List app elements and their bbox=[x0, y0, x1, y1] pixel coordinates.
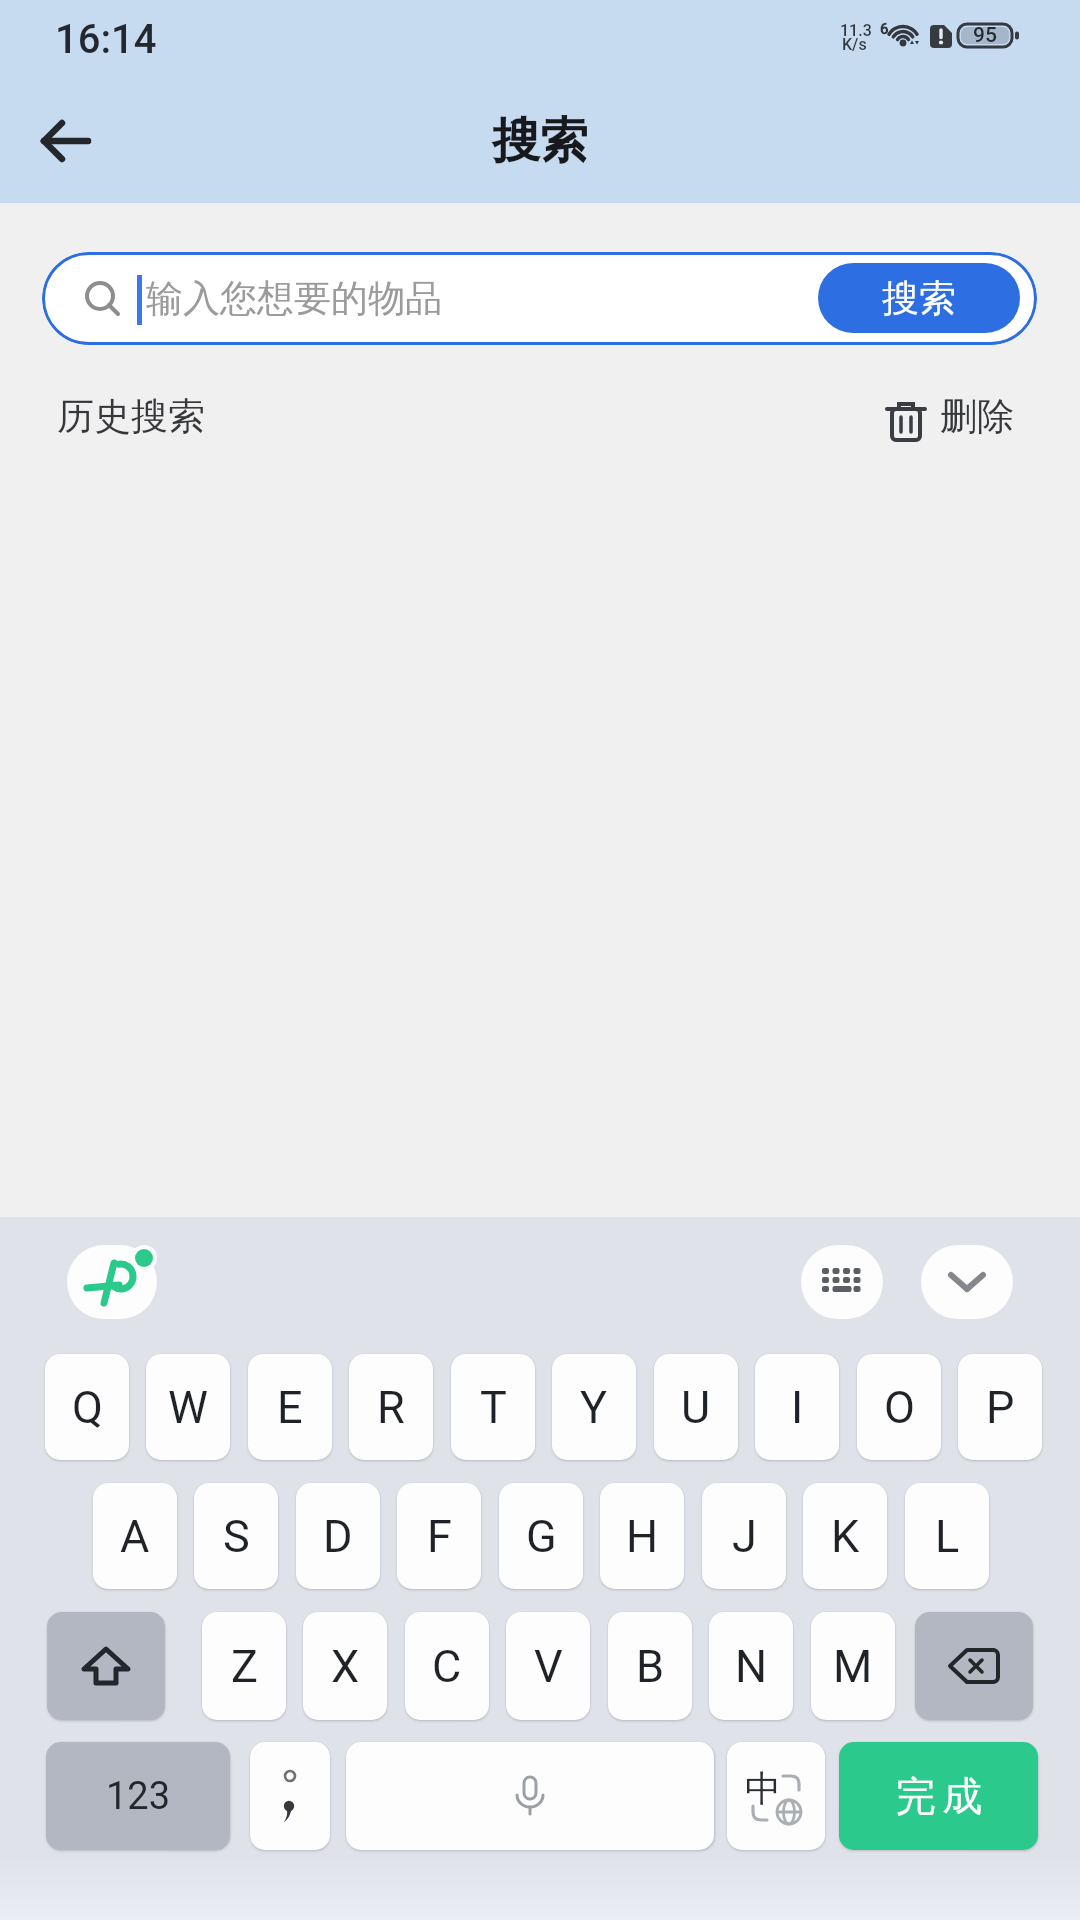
button[interactable]: 中 bbox=[727, 1742, 825, 1850]
staticText: 搜索 bbox=[492, 111, 588, 171]
button[interactable] bbox=[250, 1742, 330, 1850]
button[interactable]: D bbox=[296, 1483, 380, 1589]
staticText: K bbox=[831, 1510, 860, 1563]
button[interactable]: F bbox=[397, 1483, 481, 1589]
button[interactable] bbox=[67, 1245, 157, 1319]
staticText: D bbox=[323, 1510, 353, 1563]
staticText: Y bbox=[580, 1381, 608, 1434]
button[interactable]: S bbox=[194, 1483, 278, 1589]
staticText: X bbox=[331, 1640, 360, 1693]
staticText: 输入您想要的物品 bbox=[146, 275, 442, 322]
staticText: 123 bbox=[106, 1774, 171, 1819]
button[interactable]: L bbox=[905, 1483, 989, 1589]
staticText: P bbox=[986, 1381, 1015, 1434]
staticText: S bbox=[223, 1510, 250, 1563]
button[interactable]: 输入您想要的物品 bbox=[42, 252, 1037, 345]
staticText: U bbox=[681, 1381, 711, 1434]
button[interactable] bbox=[801, 1245, 883, 1319]
button[interactable]: A bbox=[93, 1483, 177, 1589]
button[interactable]: T bbox=[451, 1354, 535, 1460]
button[interactable]: I bbox=[755, 1354, 839, 1460]
staticText: W bbox=[168, 1381, 208, 1434]
staticText: 11.3 bbox=[840, 21, 872, 40]
button[interactable]: J bbox=[702, 1483, 786, 1589]
staticText: L bbox=[935, 1510, 960, 1563]
staticText: 删除 bbox=[940, 393, 1014, 440]
button[interactable]: Z bbox=[202, 1612, 286, 1720]
staticText: 6 bbox=[880, 20, 889, 38]
button[interactable]: X bbox=[303, 1612, 387, 1720]
button[interactable]: 搜索 bbox=[818, 263, 1020, 333]
staticText: Z bbox=[231, 1640, 258, 1693]
staticText: M bbox=[833, 1640, 873, 1693]
staticText: 中 bbox=[745, 1766, 781, 1811]
button[interactable] bbox=[915, 1612, 1033, 1720]
staticText: Q bbox=[72, 1381, 103, 1434]
staticText: R bbox=[377, 1381, 405, 1434]
button[interactable]: Q bbox=[45, 1354, 129, 1460]
staticText: E bbox=[277, 1381, 303, 1434]
button[interactable]: 删除 bbox=[880, 390, 1030, 442]
staticText: J bbox=[732, 1510, 757, 1563]
staticText: T bbox=[480, 1381, 507, 1434]
staticText: A bbox=[120, 1510, 150, 1563]
button[interactable]: W bbox=[146, 1354, 230, 1460]
staticText: G bbox=[526, 1510, 557, 1563]
button[interactable]: R bbox=[349, 1354, 433, 1460]
staticText: 搜索 bbox=[882, 275, 956, 322]
button[interactable]: N bbox=[709, 1612, 793, 1720]
button[interactable]: Y bbox=[552, 1354, 636, 1460]
staticText: N bbox=[735, 1640, 768, 1693]
button[interactable]: O bbox=[857, 1354, 941, 1460]
button[interactable]: G bbox=[499, 1483, 583, 1589]
staticText: 历史搜索 bbox=[57, 393, 205, 439]
button[interactable] bbox=[346, 1742, 714, 1850]
staticText: F bbox=[427, 1510, 452, 1563]
button[interactable]: E bbox=[248, 1354, 332, 1460]
staticText: K/s bbox=[842, 35, 867, 54]
button[interactable]: B bbox=[608, 1612, 692, 1720]
staticText: O bbox=[884, 1381, 915, 1434]
staticText: 16:14 bbox=[55, 16, 157, 63]
button[interactable]: M bbox=[811, 1612, 895, 1720]
staticText: B bbox=[636, 1640, 665, 1693]
staticText: H bbox=[626, 1510, 659, 1563]
button[interactable]: P bbox=[958, 1354, 1042, 1460]
button[interactable] bbox=[921, 1245, 1013, 1319]
staticText: I bbox=[791, 1381, 804, 1434]
staticText: 完成 bbox=[892, 1771, 986, 1821]
button[interactable]: 完成 bbox=[839, 1742, 1038, 1850]
staticText: V bbox=[534, 1640, 563, 1693]
button[interactable]: 123 bbox=[46, 1742, 230, 1850]
button[interactable] bbox=[47, 1612, 165, 1720]
button[interactable]: V bbox=[506, 1612, 590, 1720]
button[interactable]: H bbox=[600, 1483, 684, 1589]
button[interactable]: C bbox=[405, 1612, 489, 1720]
button[interactable]: K bbox=[803, 1483, 887, 1589]
staticText: C bbox=[432, 1640, 462, 1693]
staticText: 95 bbox=[958, 23, 1012, 48]
button[interactable]: U bbox=[654, 1354, 738, 1460]
button[interactable] bbox=[30, 105, 102, 177]
